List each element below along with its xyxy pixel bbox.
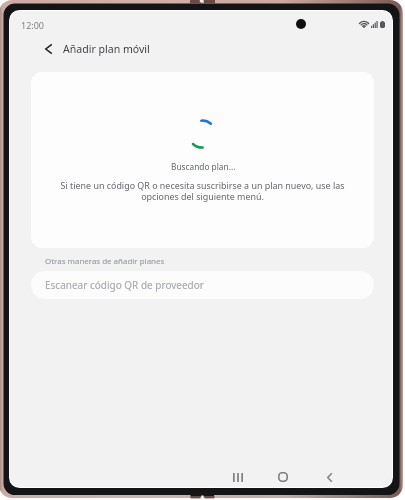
staticText: Buscando plan... [171,161,236,172]
staticText: Otras maneras de añadir planes [45,256,165,267]
button[interactable]: Escanear código QR de proveedor [31,271,374,299]
staticText: Escanear código QR de proveedor [45,278,204,292]
staticText: 12:00 [21,19,45,31]
button[interactable]: Recent apps [222,461,254,487]
button[interactable]: Back [37,37,60,60]
button[interactable]: Home [267,461,299,487]
button[interactable]: Back [313,461,345,487]
staticText: Añadir plan móvil [63,42,150,56]
staticText: Si tiene un código QR o necesita suscrib… [53,179,352,203]
